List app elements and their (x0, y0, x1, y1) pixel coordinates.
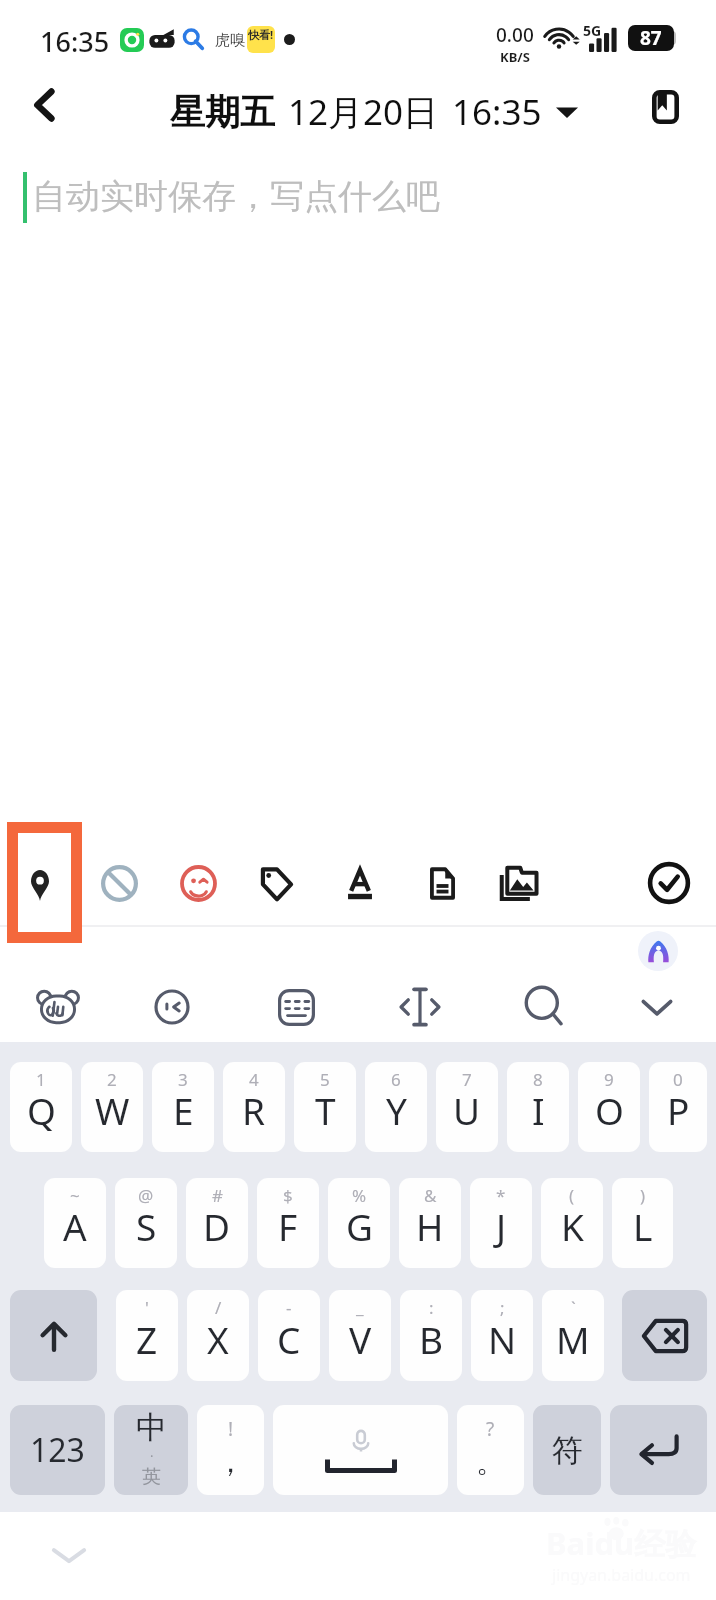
staticText: / (215, 1296, 222, 1319)
button[interactable]: # (186, 1178, 248, 1268)
button[interactable]: 7 (436, 1062, 498, 1152)
button[interactable]: Enter (610, 1405, 707, 1495)
staticText: B (419, 1314, 444, 1364)
button[interactable]: ( (541, 1178, 603, 1268)
staticText: 。 (476, 1444, 505, 1481)
button[interactable]: Backspace (622, 1290, 707, 1381)
staticText: 9 (604, 1068, 614, 1091)
staticText: ? (486, 1416, 495, 1442)
staticText: C (277, 1314, 301, 1364)
button[interactable]: 4 (223, 1062, 285, 1152)
button[interactable]: Switch language (114, 1405, 188, 1495)
button[interactable]: - (258, 1290, 320, 1381)
button[interactable]: 8 (507, 1062, 569, 1152)
staticText: ! (228, 1416, 234, 1442)
staticText: ; (500, 1296, 505, 1319)
staticText: Y (386, 1085, 407, 1135)
staticText: N (488, 1314, 517, 1364)
staticText: Z (136, 1314, 158, 1364)
button[interactable]: _ (329, 1290, 391, 1381)
button[interactable]: 星期五 (170, 88, 578, 136)
staticText: E (173, 1085, 194, 1135)
button[interactable]: ! (197, 1405, 264, 1495)
staticText: 1 (36, 1068, 46, 1091)
button[interactable]: 2 (81, 1062, 143, 1152)
button[interactable]: : (400, 1290, 462, 1381)
staticText: ) (640, 1184, 646, 1207)
button[interactable]: 123 (10, 1405, 105, 1495)
button[interactable]: Emoji (160, 836, 236, 930)
button[interactable]: ` (542, 1290, 604, 1381)
button[interactable]: * (470, 1178, 532, 1268)
button[interactable]: / (187, 1290, 249, 1381)
button[interactable]: Location (2, 836, 78, 930)
staticText: _ (356, 1296, 364, 1319)
button[interactable]: Hide keyboard (42, 1528, 96, 1582)
button[interactable]: & (399, 1178, 461, 1268)
button[interactable]: Baidu input (22, 971, 94, 1043)
staticText: 5 (320, 1068, 330, 1091)
button[interactable]: Attachment (404, 836, 480, 930)
button[interactable]: 5 (294, 1062, 356, 1152)
button[interactable]: Tag (239, 836, 315, 930)
button[interactable]: ; (471, 1290, 533, 1381)
button[interactable]: Disable (81, 836, 157, 930)
button[interactable]: Done (631, 836, 707, 930)
button[interactable]: 0 (649, 1062, 707, 1152)
staticText: U (453, 1085, 481, 1135)
staticText: 3 (178, 1068, 188, 1091)
staticText: 123 (30, 1428, 85, 1472)
staticText: $ (283, 1184, 293, 1207)
staticText: · (150, 1447, 154, 1465)
staticText: I (532, 1085, 545, 1135)
staticText: G (346, 1201, 373, 1251)
staticText: 星期五 (170, 90, 275, 134)
button[interactable]: 1 (10, 1062, 72, 1152)
staticText: % (352, 1184, 367, 1207)
staticText: P (667, 1085, 690, 1135)
staticText: D (203, 1201, 231, 1251)
staticText: T (315, 1085, 336, 1135)
button[interactable]: ) (612, 1178, 673, 1268)
staticText: R (242, 1085, 266, 1135)
staticText: 87 (640, 25, 662, 51)
button[interactable]: Emoticons (136, 971, 208, 1043)
button[interactable]: AI assistant (638, 931, 678, 971)
staticText: ` (571, 1296, 576, 1319)
button[interactable]: @ (115, 1178, 177, 1268)
button[interactable]: Keyboard layout (260, 971, 332, 1043)
staticText: 虎嗅 (215, 31, 245, 50)
button[interactable]: 6 (365, 1062, 427, 1152)
button[interactable]: 9 (578, 1062, 640, 1152)
button[interactable]: Shift (10, 1290, 97, 1381)
button[interactable]: Collapse (621, 971, 693, 1043)
button[interactable]: ' (116, 1290, 178, 1381)
button[interactable]: $ (257, 1178, 319, 1268)
button[interactable]: ? (457, 1405, 524, 1495)
button[interactable]: 符 (533, 1405, 601, 1495)
staticText: 英 (142, 1465, 161, 1489)
staticText: @ (138, 1184, 154, 1207)
staticText: # (212, 1184, 223, 1207)
staticText: J (496, 1201, 507, 1251)
button[interactable]: Space (273, 1405, 448, 1495)
button[interactable]: Search (510, 971, 582, 1043)
staticText: 5G (583, 21, 602, 40)
button[interactable]: Move cursor (384, 971, 456, 1043)
staticText: 符 (552, 1431, 583, 1470)
staticText: 16:35 (452, 88, 542, 136)
button[interactable]: 3 (152, 1062, 214, 1152)
staticText: & (424, 1184, 437, 1207)
staticText: ~ (70, 1184, 80, 1207)
staticText: ' (145, 1296, 149, 1319)
button[interactable]: Notebook (636, 78, 694, 136)
button[interactable]: Gallery (481, 836, 557, 930)
button[interactable]: ~ (44, 1178, 106, 1268)
staticText: 7 (462, 1068, 472, 1091)
button[interactable]: Back (16, 76, 74, 134)
button[interactable]: Text style (322, 836, 398, 930)
staticText: : (429, 1296, 434, 1319)
button[interactable]: % (328, 1178, 390, 1268)
staticText: * (496, 1184, 506, 1207)
